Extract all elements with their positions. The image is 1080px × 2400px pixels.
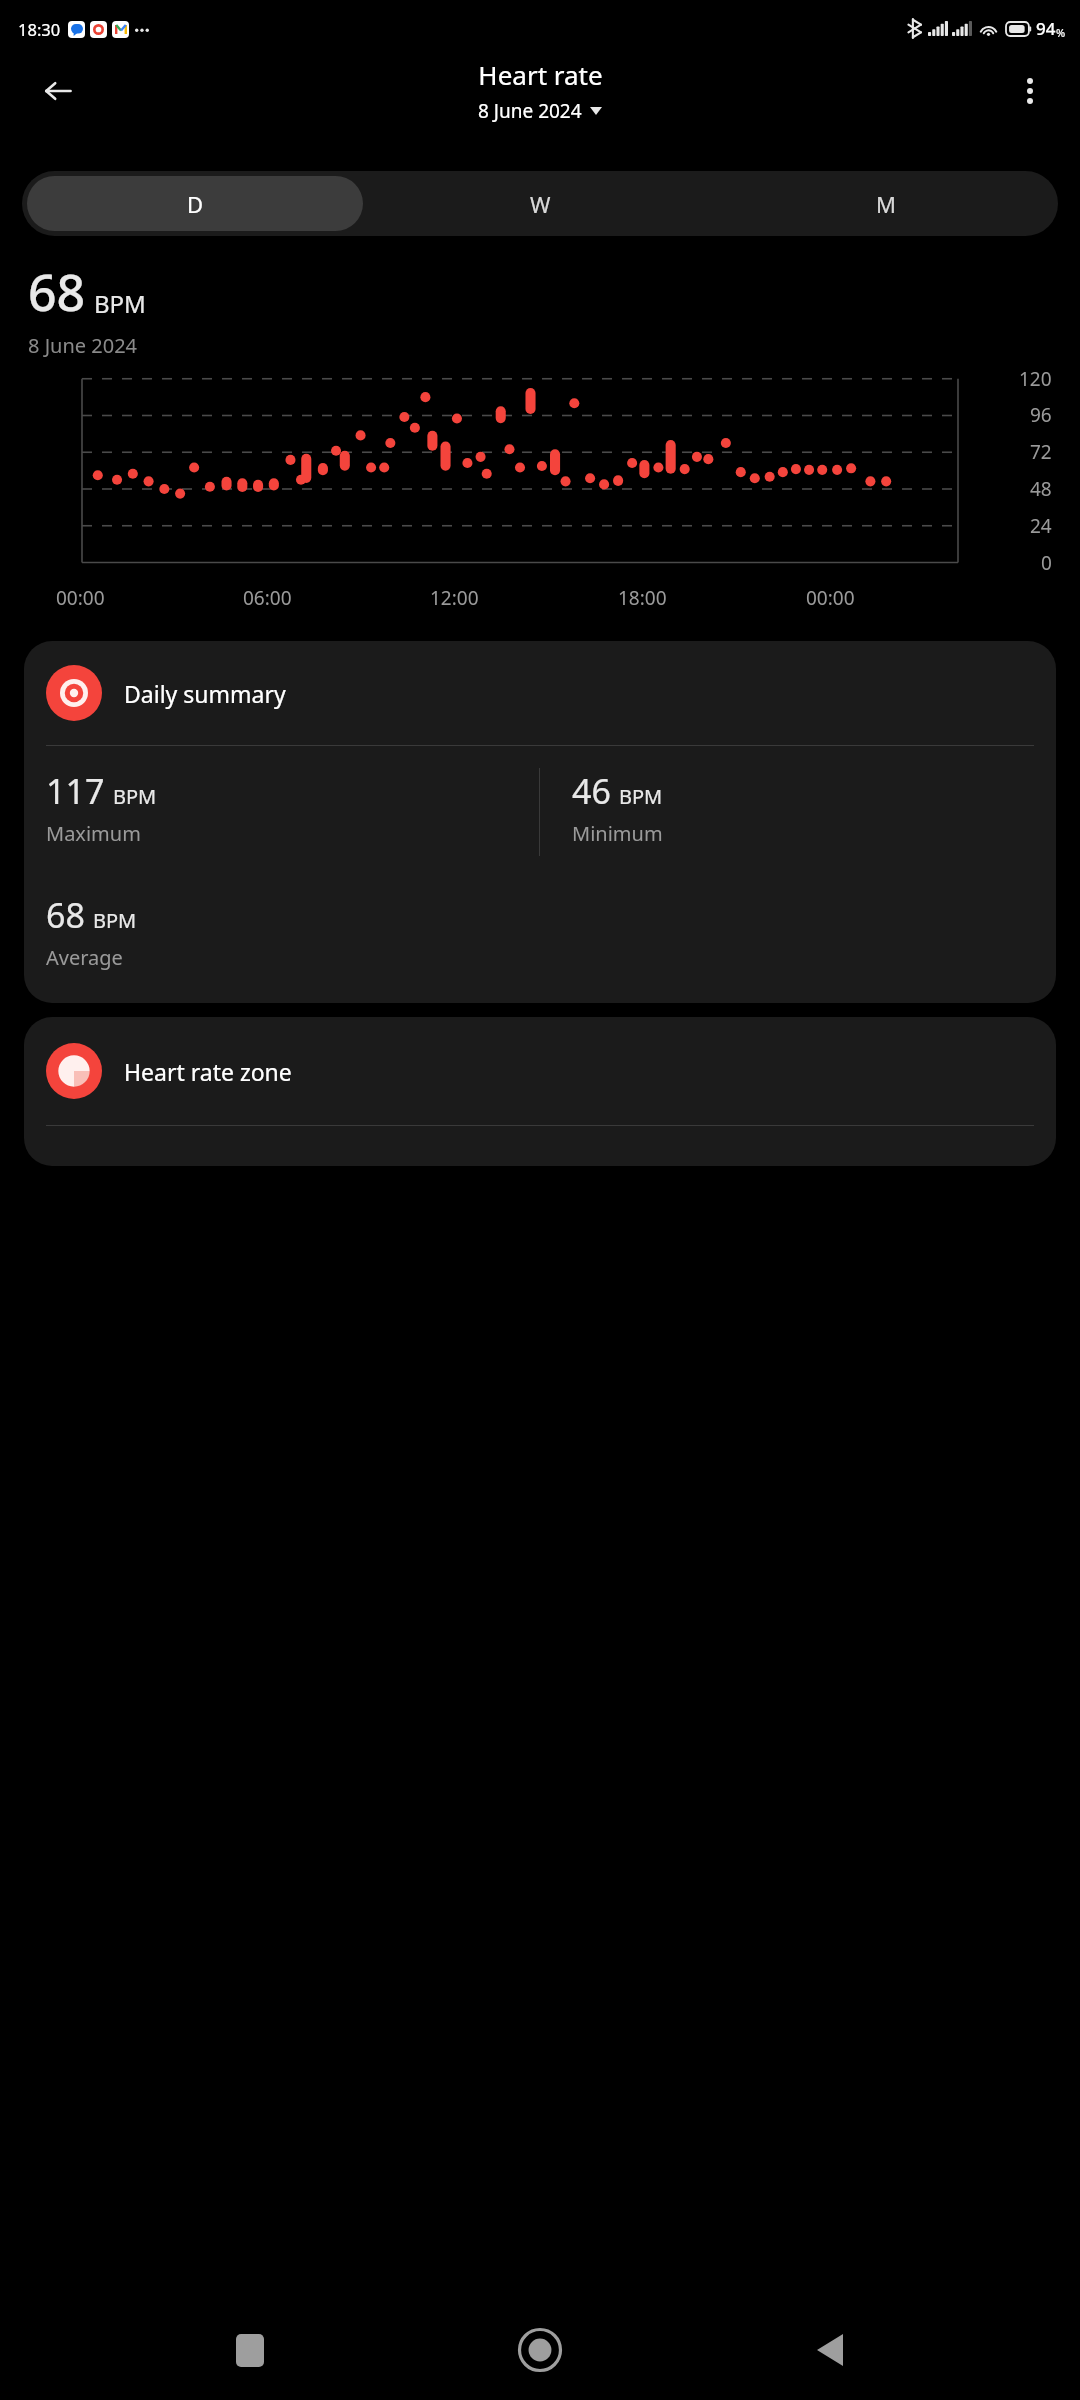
staticText: Daily summary — [124, 678, 286, 709]
staticText: % — [1056, 25, 1066, 40]
staticText: 8 June 2024 — [28, 332, 138, 359]
staticText: 18:00 — [618, 585, 667, 611]
staticText: 12:00 — [430, 585, 479, 611]
staticText: BPM — [113, 783, 157, 810]
staticText: Average — [46, 944, 123, 971]
staticText: 68 — [46, 892, 85, 938]
staticText: 96 — [1030, 402, 1052, 428]
staticText: 117 — [46, 768, 105, 814]
staticText: 0 — [1041, 550, 1052, 576]
button[interactable]: W — [373, 176, 708, 231]
staticText: Maximum — [46, 820, 141, 847]
staticText: 120 — [1019, 366, 1052, 392]
staticText: 00:00 — [56, 585, 105, 611]
button[interactable]: D — [27, 176, 363, 231]
staticText: 06:00 — [243, 585, 292, 611]
button[interactable]: M — [718, 176, 1053, 231]
button[interactable]: Heart rate zone — [24, 1017, 1056, 1166]
staticText: Minimum — [572, 820, 663, 847]
button[interactable]: More options — [1002, 63, 1058, 119]
staticText: 72 — [1030, 439, 1052, 465]
staticText: BPM — [94, 287, 146, 320]
button[interactable]: Home — [500, 2310, 580, 2390]
staticText: Heart rate — [478, 57, 603, 92]
button[interactable]: Back — [790, 2310, 870, 2390]
button[interactable]: Daily summary — [24, 641, 1056, 1003]
staticText: 8 June 2024 — [478, 98, 582, 124]
staticText: W — [530, 189, 551, 219]
staticText: 68 — [28, 258, 86, 326]
button[interactable]: Recent apps — [210, 2310, 290, 2390]
staticText: BPM — [93, 907, 137, 934]
staticText: 24 — [1030, 513, 1052, 539]
button[interactable]: 8 June 2024 — [474, 96, 606, 126]
staticText: Heart rate zone — [124, 1056, 292, 1087]
staticText: 48 — [1030, 476, 1052, 502]
staticText: 18:30 — [18, 18, 61, 40]
staticText: BPM — [619, 783, 663, 810]
staticText: M — [876, 189, 896, 219]
staticText: 46 — [572, 768, 611, 814]
staticText: 94 — [1036, 17, 1056, 40]
staticText: D — [187, 189, 204, 219]
staticText: 00:00 — [806, 585, 855, 611]
button[interactable]: Back — [30, 63, 86, 119]
